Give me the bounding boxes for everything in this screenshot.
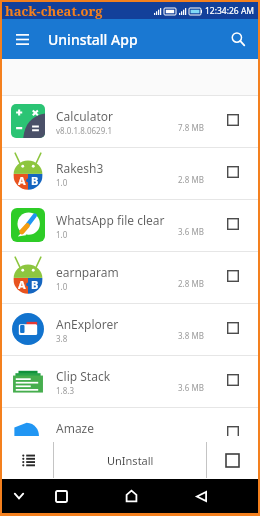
- staticText: B: [31, 173, 39, 188]
- staticText: Uninstall App: [48, 30, 138, 49]
- button[interactable]: Amaze: [2, 407, 258, 436]
- button[interactable]: A: [2, 147, 258, 199]
- button[interactable]: Select all: [206, 441, 258, 479]
- button[interactable]: Calculator: [2, 95, 258, 147]
- staticText: 12:34:26 AM: [205, 5, 255, 17]
- button[interactable]: A: [2, 251, 258, 303]
- staticText: B: [31, 277, 39, 292]
- button[interactable]: Hide keyboard: [2, 479, 36, 513]
- staticText: Calculator: [56, 108, 113, 124]
- button[interactable]: Search: [224, 25, 252, 53]
- button[interactable]: Select Clip Stack: [222, 369, 244, 391]
- staticText: 2.8 MB: [178, 278, 204, 289]
- button[interactable]: Select Amaze: [222, 421, 244, 436]
- button[interactable]: AnExplorer: [2, 303, 258, 355]
- button[interactable]: Home: [114, 479, 148, 513]
- staticText: v8.0.1.8.0629.1: [56, 125, 112, 136]
- staticText: Rakesh3: [56, 160, 104, 176]
- staticText: earnparam: [56, 264, 119, 280]
- staticText: Clip Stack: [56, 368, 111, 384]
- button[interactable]: Select earnparam: [222, 265, 244, 287]
- button[interactable]: Select WhatsApp file clear: [222, 213, 244, 235]
- staticText: 2.8 MB: [178, 174, 204, 185]
- staticText: WhatsApp file clear: [56, 212, 165, 228]
- button[interactable]: Select AnExplorer: [222, 317, 244, 339]
- staticText: 1.0: [56, 281, 68, 292]
- staticText: 1.0: [56, 229, 68, 240]
- staticText: 3.8 MB: [178, 330, 204, 341]
- button[interactable]: List view: [2, 441, 55, 479]
- staticText: AnExplorer: [56, 316, 119, 332]
- button[interactable]: Back: [184, 479, 218, 513]
- button[interactable]: Select Calculator: [222, 109, 244, 131]
- staticText: 3.6 MB: [178, 226, 204, 237]
- staticText: 3.8: [56, 333, 68, 344]
- button[interactable]: UnInstall: [55, 441, 206, 479]
- staticText: UnInstall: [107, 453, 154, 468]
- staticText: hack-cheat.org: [5, 2, 103, 19]
- staticText: 7.8 MB: [178, 122, 204, 133]
- staticText: 1.0: [56, 177, 68, 188]
- button[interactable]: Clip Stack: [2, 355, 258, 407]
- button[interactable]: Menu: [8, 25, 36, 53]
- staticText: A: [18, 277, 26, 292]
- staticText: Amaze: [56, 420, 95, 436]
- button[interactable]: WhatsApp file clear: [2, 199, 258, 251]
- staticText: A: [18, 173, 26, 188]
- button[interactable]: Recent apps: [44, 479, 78, 513]
- staticText: 1.8.3: [56, 385, 75, 396]
- button[interactable]: Select Rakesh3: [222, 161, 244, 183]
- staticText: 3.6 MB: [178, 382, 204, 393]
